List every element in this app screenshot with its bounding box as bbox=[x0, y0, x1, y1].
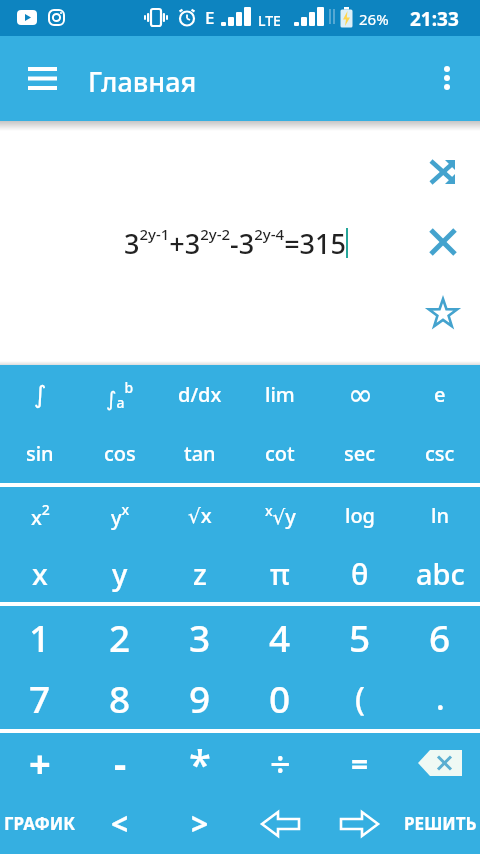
button[interactable]: 1 bbox=[0, 606, 80, 667]
staticText: 26% bbox=[359, 9, 389, 29]
button[interactable]: x bbox=[0, 544, 80, 602]
staticText: = bbox=[351, 743, 369, 784]
button[interactable]: cos bbox=[80, 424, 160, 483]
button[interactable]: 9 bbox=[160, 667, 240, 729]
button[interactable]: РЕШИТЬ bbox=[400, 793, 480, 854]
staticText: ÷ bbox=[270, 739, 291, 788]
staticText: 6 bbox=[429, 612, 451, 662]
button[interactable]: 7 bbox=[0, 667, 80, 729]
staticText: sec bbox=[344, 440, 376, 467]
staticText: d/dx bbox=[178, 381, 222, 408]
staticText: y bbox=[112, 554, 128, 593]
button[interactable]: 3 bbox=[160, 606, 240, 667]
staticText: yx bbox=[111, 500, 130, 531]
button[interactable] bbox=[14, 50, 70, 106]
staticText: sin bbox=[26, 440, 54, 467]
button[interactable]: sec bbox=[320, 424, 400, 483]
staticText: √x bbox=[188, 502, 212, 529]
staticText: 2 bbox=[109, 612, 131, 662]
button[interactable]: + bbox=[0, 733, 80, 793]
button[interactable]: ( bbox=[320, 667, 400, 729]
staticText: E bbox=[205, 6, 215, 29]
staticText: . bbox=[436, 676, 445, 720]
button[interactable]: = bbox=[320, 733, 400, 793]
button[interactable]: ÷ bbox=[240, 733, 320, 793]
staticText: 32y-1+32y-2-32y-4=315 bbox=[124, 224, 346, 262]
staticText: abc bbox=[416, 554, 465, 593]
button[interactable]: * bbox=[160, 733, 240, 793]
button[interactable] bbox=[427, 156, 459, 188]
button[interactable]: . bbox=[400, 667, 480, 729]
staticText: ∫ab bbox=[106, 378, 134, 412]
button[interactable]: 4 bbox=[240, 606, 320, 667]
button[interactable]: 5 bbox=[320, 606, 400, 667]
button[interactable]: 8 bbox=[80, 667, 160, 729]
staticText: θ bbox=[351, 554, 369, 593]
staticText: 21:33 bbox=[410, 6, 459, 32]
staticText: log bbox=[345, 502, 376, 529]
staticText: x bbox=[32, 554, 48, 593]
staticText: + bbox=[29, 737, 51, 789]
staticText: π bbox=[270, 554, 290, 593]
button[interactable]: tan bbox=[160, 424, 240, 483]
button[interactable]: abc bbox=[400, 544, 480, 602]
button[interactable] bbox=[427, 226, 459, 258]
staticText: cot bbox=[265, 440, 295, 467]
button[interactable] bbox=[400, 733, 480, 793]
button[interactable]: < bbox=[80, 793, 160, 854]
button[interactable]: 6 bbox=[400, 606, 480, 667]
button[interactable]: cot bbox=[240, 424, 320, 483]
button[interactable]: d/dx bbox=[160, 365, 240, 424]
button[interactable] bbox=[240, 793, 320, 854]
staticText: x2 bbox=[31, 500, 50, 531]
button[interactable]: ГРАФИК bbox=[0, 793, 80, 854]
button[interactable]: x2 bbox=[0, 487, 80, 544]
button[interactable] bbox=[423, 50, 471, 106]
staticText: 8 bbox=[109, 673, 131, 723]
staticText: 5 bbox=[349, 612, 371, 662]
staticText: ln bbox=[431, 502, 449, 529]
staticText: < bbox=[111, 803, 129, 844]
button[interactable]: > bbox=[160, 793, 240, 854]
staticText: РЕШИТЬ bbox=[404, 812, 477, 835]
staticText: ∫ bbox=[34, 381, 47, 409]
staticText: 1 bbox=[29, 612, 51, 662]
staticText: lim bbox=[265, 381, 295, 408]
staticText: ( bbox=[355, 676, 365, 720]
staticText: tan bbox=[184, 440, 216, 467]
button[interactable]: y bbox=[80, 544, 160, 602]
button[interactable]: x√y bbox=[240, 487, 320, 544]
staticText: Главная bbox=[88, 63, 197, 100]
button[interactable]: ∞ bbox=[320, 365, 400, 424]
button[interactable] bbox=[320, 793, 400, 854]
button[interactable]: 0 bbox=[240, 667, 320, 729]
staticText: LTE bbox=[258, 11, 281, 30]
button[interactable]: π bbox=[240, 544, 320, 602]
staticText: 9 bbox=[189, 673, 211, 723]
button[interactable]: ln bbox=[400, 487, 480, 544]
staticText: ∞ bbox=[348, 377, 373, 412]
staticText: e bbox=[434, 381, 446, 408]
staticText: 4 bbox=[269, 612, 291, 662]
staticText: 7 bbox=[29, 673, 51, 723]
button[interactable]: log bbox=[320, 487, 400, 544]
staticText: z bbox=[193, 554, 207, 593]
staticText: cos bbox=[104, 440, 136, 467]
button[interactable]: 2 bbox=[80, 606, 160, 667]
staticText: * bbox=[189, 736, 211, 790]
button[interactable]: e bbox=[400, 365, 480, 424]
button[interactable]: sin bbox=[0, 424, 80, 483]
button[interactable]: z bbox=[160, 544, 240, 602]
staticText: > bbox=[191, 803, 209, 844]
button[interactable]: ∫ab bbox=[80, 365, 160, 424]
button[interactable]: √x bbox=[160, 487, 240, 544]
staticText: x√y bbox=[265, 501, 296, 530]
button[interactable]: - bbox=[80, 733, 160, 793]
button[interactable]: csc bbox=[400, 424, 480, 483]
button[interactable]: θ bbox=[320, 544, 400, 602]
staticText: 0 bbox=[269, 673, 291, 723]
button[interactable]: ∫ bbox=[0, 365, 80, 424]
button[interactable]: yx bbox=[80, 487, 160, 544]
button[interactable]: lim bbox=[240, 365, 320, 424]
button[interactable] bbox=[426, 296, 460, 330]
